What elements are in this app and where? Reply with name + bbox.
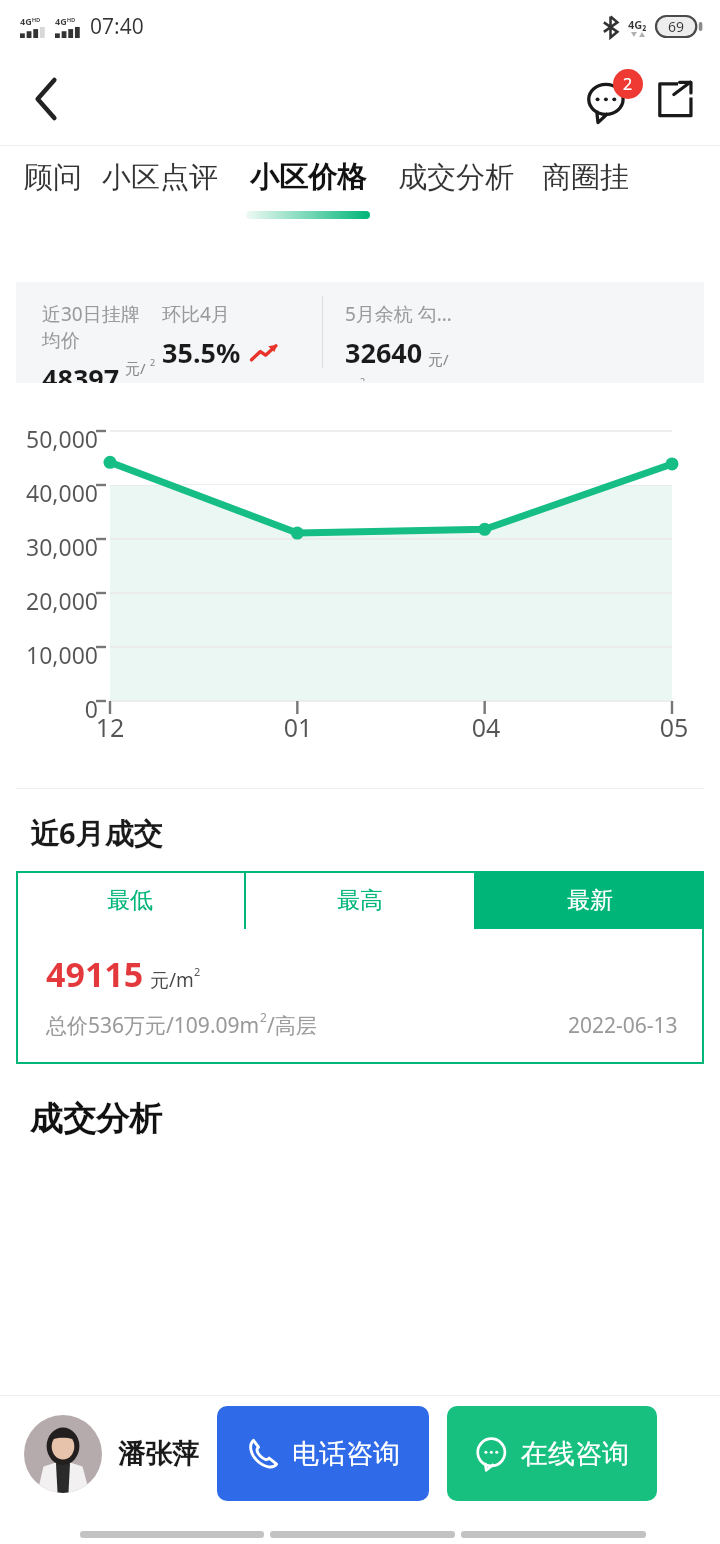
staticText: 商圈挂: [542, 159, 629, 196]
button[interactable]: Share: [650, 74, 700, 124]
staticText: 4G₂: [628, 17, 647, 32]
staticText: 在线咨询: [521, 1437, 629, 1471]
staticText: 环比4月: [162, 301, 230, 327]
staticText: 顾问: [24, 159, 82, 196]
button[interactable]: Navigation: [270, 1531, 455, 1538]
staticText: 32640: [345, 334, 423, 371]
staticText: 04: [454, 710, 518, 744]
staticText: /高层: [267, 1011, 317, 1040]
staticText: 05: [642, 710, 706, 744]
staticText: 2: [260, 1009, 267, 1025]
staticText: 2: [194, 964, 201, 979]
staticText: 电话咨询: [292, 1437, 400, 1471]
staticText: 近6月成交: [30, 813, 163, 853]
staticText: 40,000: [0, 477, 98, 508]
button[interactable]: 在线咨询: [447, 1406, 657, 1501]
button[interactable]: 小区价格: [246, 159, 370, 219]
staticText: 元/m: [150, 967, 194, 993]
staticText: 69: [668, 17, 685, 36]
staticText: 49115: [46, 951, 144, 997]
staticText: 成交分析: [398, 159, 514, 196]
staticText: 4Gᴴᴰ: [55, 15, 76, 27]
staticText: 最低: [107, 886, 153, 915]
staticText: 2022-06-13: [568, 1011, 678, 1040]
staticText: 近30日挂牌均价: [42, 301, 150, 353]
button[interactable]: 电话咨询: [217, 1406, 429, 1501]
staticText: 35.5%: [162, 334, 241, 371]
button[interactable]: 商圈挂: [542, 159, 629, 196]
button[interactable]: 成交分析: [398, 159, 514, 196]
staticText: 2: [623, 73, 633, 95]
button[interactable]: 最高: [246, 871, 474, 929]
staticText: 成交分析: [30, 1098, 162, 1140]
staticText: 0: [0, 693, 98, 724]
button[interactable]: 顾问: [24, 159, 82, 196]
staticText: 30,000: [0, 531, 98, 562]
button[interactable]: Navigation: [461, 1531, 646, 1538]
staticText: 4Gᴴᴰ: [20, 15, 41, 27]
staticText: 10,000: [0, 639, 98, 670]
staticText: 元/m: [125, 358, 150, 381]
staticText: 50,000: [0, 423, 98, 454]
button[interactable]: 最低: [16, 871, 244, 929]
staticText: 最新: [567, 886, 613, 915]
staticText: 01: [266, 710, 330, 744]
staticText: 小区价格: [250, 159, 366, 196]
staticText: 最高: [337, 886, 383, 915]
button[interactable]: [24, 1415, 102, 1493]
staticText: 5月余杭 勾…: [345, 301, 452, 327]
button[interactable]: 小区点评: [102, 159, 218, 196]
staticText: 12: [78, 710, 142, 744]
staticText: 元/: [428, 349, 449, 369]
staticText: 小区点评: [102, 159, 218, 196]
button[interactable]: Messages: [584, 71, 640, 127]
button[interactable]: Navigation: [80, 1531, 264, 1538]
staticText: 总价536万元/109.09m: [46, 1011, 260, 1040]
staticText: 48397: [42, 360, 120, 383]
staticText: 20,000: [0, 585, 98, 616]
staticText: 2: [360, 375, 366, 381]
staticText: 07:40: [90, 12, 144, 41]
button[interactable]: Back: [22, 75, 70, 123]
staticText: 潘张萍: [118, 1437, 199, 1471]
button[interactable]: 最新: [476, 871, 704, 929]
